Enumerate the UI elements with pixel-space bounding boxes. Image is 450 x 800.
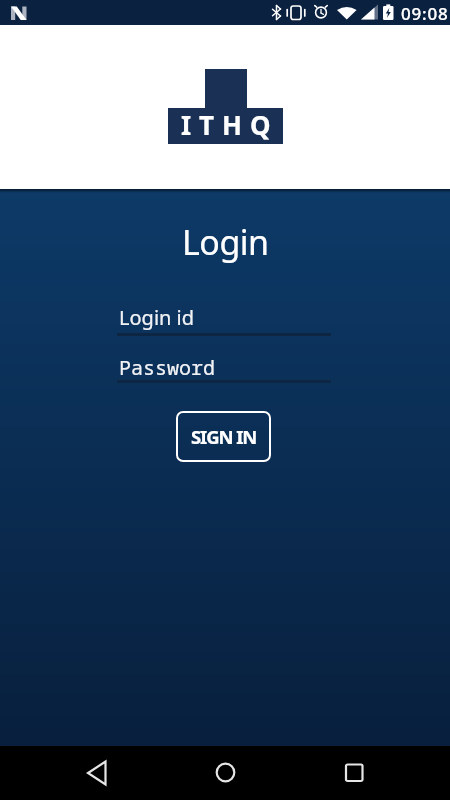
staticText: Login [182,219,269,265]
button[interactable] [201,749,249,797]
button[interactable]: Login id [117,304,331,336]
staticText: SIGN IN [191,424,257,449]
staticText: Login id [119,304,195,331]
button[interactable] [72,749,120,797]
button[interactable] [330,749,378,797]
staticText: ITHQ [181,107,279,142]
button[interactable]: Password [117,354,331,383]
staticText: 09:08 [401,2,449,25]
button[interactable]: SIGN IN [176,411,271,462]
staticText: Password [119,354,215,381]
